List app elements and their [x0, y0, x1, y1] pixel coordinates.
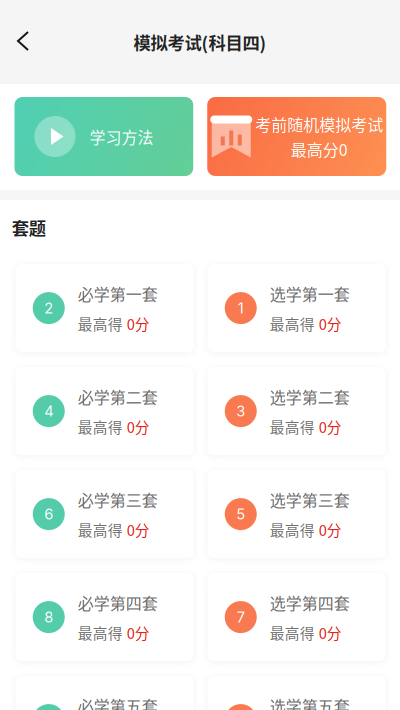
button[interactable]: 2 [16, 264, 194, 352]
staticText: 选学第二套 [270, 385, 350, 408]
button[interactable]: 8 [16, 573, 194, 661]
staticText: 选学第一套 [270, 282, 350, 305]
button[interactable]: 3 [208, 367, 386, 455]
staticText: 0分 [319, 519, 342, 540]
staticText: 最高得 [78, 622, 123, 643]
button[interactable]: 返回 [0, 18, 44, 66]
staticText: 7 [237, 608, 245, 626]
staticText: 必学第一套 [78, 282, 158, 305]
button[interactable]: 7 [208, 573, 386, 661]
staticText: 最高得 [78, 519, 123, 540]
staticText: 0分 [319, 313, 342, 334]
button[interactable]: 4 [16, 367, 194, 455]
staticText: 0分 [127, 416, 150, 437]
staticText: 最高得 [270, 416, 315, 437]
staticText: 0分 [127, 622, 150, 643]
staticText: 最高得 [270, 622, 315, 643]
staticText: 套题 [12, 215, 46, 240]
staticText: 必学第五套 [78, 694, 158, 710]
staticText: 选学第五套 [270, 694, 350, 710]
staticText: 最高得 [78, 416, 123, 437]
staticText: 最高得 [270, 519, 315, 540]
button[interactable]: 10 [16, 676, 194, 710]
button[interactable]: 9 [208, 676, 386, 710]
staticText: 2 [44, 299, 53, 317]
staticText: 必学第二套 [78, 385, 158, 408]
button[interactable]: 学习方法 [14, 97, 193, 176]
staticText: 3 [236, 402, 245, 420]
staticText: 选学第四套 [270, 591, 350, 614]
staticText: 学习方法 [89, 125, 153, 148]
staticText: 考前随机模拟考试 [255, 112, 383, 135]
staticText: 0分 [127, 519, 150, 540]
staticText: 4 [44, 402, 53, 420]
staticText: 1 [238, 299, 244, 317]
staticText: 选学第三套 [270, 488, 350, 511]
staticText: 8 [44, 608, 53, 626]
staticText: 最高分0 [291, 137, 348, 161]
staticText: 5 [236, 505, 245, 523]
button[interactable]: 5 [208, 470, 386, 558]
staticText: 6 [44, 505, 53, 523]
staticText: 最高得 [270, 313, 315, 334]
staticText: 必学第四套 [78, 591, 158, 614]
staticText: 最高得 [78, 313, 123, 334]
button[interactable]: 1 [208, 264, 386, 352]
staticText: 必学第三套 [78, 488, 158, 511]
staticText: 模拟考试(科目四) [133, 29, 266, 55]
staticText: 0分 [319, 622, 342, 643]
staticText: 0分 [319, 416, 342, 437]
button[interactable]: 6 [16, 470, 194, 558]
button[interactable]: 考前随机模拟考试 [207, 97, 386, 176]
staticText: 0分 [127, 313, 150, 334]
